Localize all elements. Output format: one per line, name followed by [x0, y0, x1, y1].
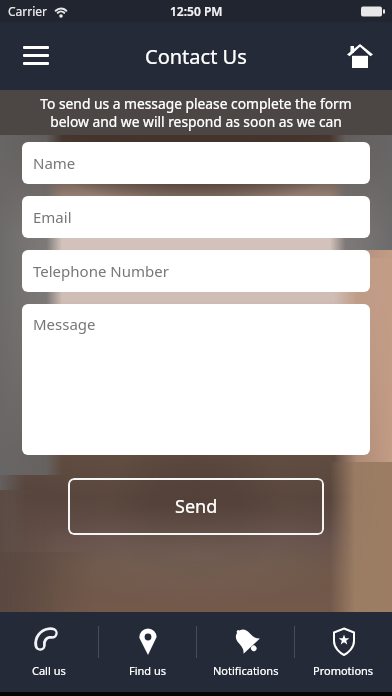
- button[interactable]: Promotions: [295, 612, 392, 692]
- staticText: Carrier: [8, 3, 48, 19]
- staticText: Notifications: [213, 663, 279, 678]
- staticText: Find us: [129, 663, 167, 678]
- staticText: Name: [33, 153, 76, 173]
- button[interactable]: [14, 34, 58, 78]
- staticText: Email: [33, 207, 72, 227]
- staticText: Call us: [32, 663, 66, 678]
- staticText: Message: [33, 314, 96, 334]
- staticText: To send us a message please complete the…: [40, 94, 352, 131]
- button[interactable]: Name: [22, 142, 370, 184]
- staticText: 12:50 PM: [170, 3, 223, 19]
- button[interactable]: Telephone Number: [22, 250, 370, 292]
- button[interactable]: [338, 34, 382, 78]
- button[interactable]: Find us: [99, 612, 196, 692]
- button[interactable]: Notifications: [197, 612, 294, 692]
- button[interactable]: Call us: [0, 612, 98, 692]
- button[interactable]: Message: [22, 304, 370, 455]
- staticText: Contact Us: [145, 43, 247, 70]
- staticText: Promotions: [313, 663, 374, 678]
- staticText: Telephone Number: [33, 261, 169, 281]
- button[interactable]: Send: [68, 478, 324, 535]
- button[interactable]: Email: [22, 196, 370, 238]
- staticText: Send: [175, 494, 218, 519]
